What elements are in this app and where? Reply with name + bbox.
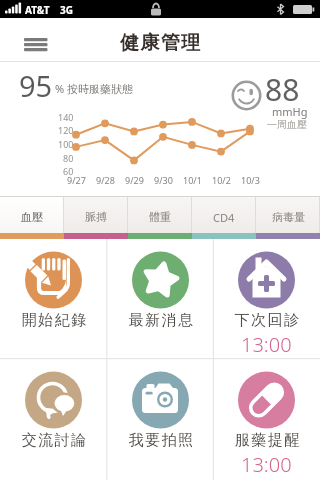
button[interactable]: 脈搏 <box>64 197 128 233</box>
button[interactable]: 最新消息 <box>107 239 214 359</box>
staticText: 100 <box>58 138 74 150</box>
button[interactable]: CD4 <box>192 197 256 233</box>
button[interactable]: 交流討論 <box>0 359 107 479</box>
staticText: 9/28 <box>96 174 115 186</box>
staticText: 3G <box>60 3 73 17</box>
staticText: 140 <box>58 111 74 123</box>
staticText: AT&T <box>25 3 50 17</box>
staticText: 120 <box>58 124 74 136</box>
staticText: 88 <box>265 69 300 110</box>
staticText: 體重 <box>149 210 171 224</box>
staticText: 95 <box>19 66 53 105</box>
staticText: mmHg <box>272 104 308 119</box>
staticText: 病毒量 <box>272 210 305 224</box>
staticText: 13:00 <box>241 451 292 475</box>
staticText: 服藥提醒 <box>234 431 300 450</box>
staticText: 開始紀錄 <box>21 311 87 330</box>
button[interactable]: 服藥提醒 <box>213 359 320 479</box>
button[interactable]: 體重 <box>128 197 192 233</box>
button[interactable]: 我要拍照 <box>107 359 214 479</box>
staticText: 10/3 <box>241 174 260 186</box>
button[interactable] <box>18 32 54 58</box>
staticText: 健康管理 <box>119 31 201 55</box>
staticText: 9/30 <box>154 174 173 186</box>
staticText: 最新消息 <box>128 311 194 330</box>
staticText: 下次回診 <box>234 311 300 330</box>
staticText: 9/29 <box>125 174 144 186</box>
staticText: 9/27 <box>67 174 86 186</box>
staticText: 10/1 <box>183 174 202 186</box>
staticText: 80 <box>63 152 74 164</box>
staticText: 13:00 <box>241 331 292 355</box>
staticText: 10/2 <box>212 174 231 186</box>
staticText: 60 <box>63 165 74 177</box>
button[interactable]: 病毒量 <box>256 197 320 233</box>
staticText: CD4 <box>213 210 235 225</box>
button[interactable]: 下次回診 <box>213 239 320 359</box>
button[interactable]: 血壓 <box>0 197 64 233</box>
staticText: % 按時服藥狀態 <box>55 81 134 96</box>
staticText: 脈搏 <box>85 210 107 224</box>
staticText: 血壓 <box>21 210 43 224</box>
staticText: 交流討論 <box>21 431 87 450</box>
button[interactable]: 開始紀錄 <box>0 239 107 359</box>
staticText: 一周血壓 <box>267 118 307 131</box>
staticText: 我要拍照 <box>128 431 194 450</box>
